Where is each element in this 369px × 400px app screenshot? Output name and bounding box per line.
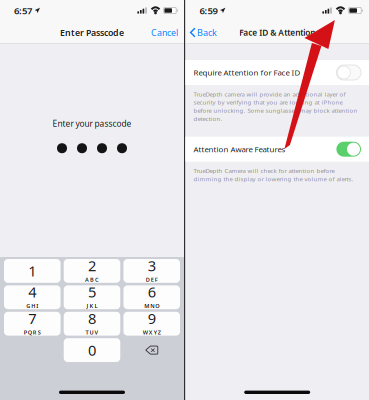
staticText: Require Attention for Face ID <box>193 67 300 78</box>
button[interactable]: 9 <box>123 312 180 336</box>
staticText: 5 <box>88 282 96 302</box>
staticText: Cancel <box>151 26 178 38</box>
button[interactable]: Cancel <box>148 23 181 41</box>
button[interactable]: 1 <box>4 259 60 283</box>
staticText: 1 <box>28 261 36 281</box>
staticText: Enter Passcode <box>60 26 124 38</box>
staticText: T U V <box>85 328 98 336</box>
staticText: A B C <box>85 276 99 283</box>
button[interactable]: 2 <box>64 259 120 283</box>
staticText: 4 <box>28 282 36 302</box>
staticText: J K L <box>86 302 97 310</box>
staticText: Enter your passcode <box>52 118 131 129</box>
staticText: 6 <box>148 282 156 302</box>
staticText: 2 <box>88 255 96 275</box>
button[interactable]: Attention Aware Features <box>185 137 369 162</box>
button[interactable]: Delete <box>123 338 180 362</box>
button[interactable]: 3 <box>123 259 180 283</box>
button[interactable]: 0 <box>64 338 120 362</box>
button[interactable]: 7 <box>4 312 60 336</box>
staticText: 6:57 <box>14 4 32 17</box>
staticText: 3 <box>148 255 156 275</box>
button[interactable]: 6 <box>123 285 180 309</box>
staticText: 0 <box>88 340 96 360</box>
staticText: D E F <box>146 276 158 283</box>
staticText: Attention Aware Features <box>193 144 285 154</box>
staticText: 7 <box>28 308 36 328</box>
staticText: W X Y Z <box>143 328 161 336</box>
button[interactable]: 8 <box>64 312 120 336</box>
staticText: Face ID & Attention <box>239 27 315 38</box>
staticText: 8 <box>88 308 96 328</box>
staticText: Back <box>197 26 217 39</box>
button[interactable]: 4 <box>4 285 60 309</box>
staticText: 6:59 <box>199 4 217 17</box>
staticText: 9 <box>148 308 156 328</box>
staticText: G H I <box>26 302 38 310</box>
button[interactable]: Back <box>189 23 220 42</box>
staticText: TrueDepth camera will provide an additio… <box>193 90 357 123</box>
staticText: M N O <box>144 302 159 310</box>
staticText: TrueDepth Camera will check for attentio… <box>193 167 353 183</box>
button[interactable]: Require Attention for Face ID <box>185 60 369 85</box>
staticText: P Q R S <box>24 328 41 336</box>
button[interactable]: 5 <box>64 285 120 309</box>
